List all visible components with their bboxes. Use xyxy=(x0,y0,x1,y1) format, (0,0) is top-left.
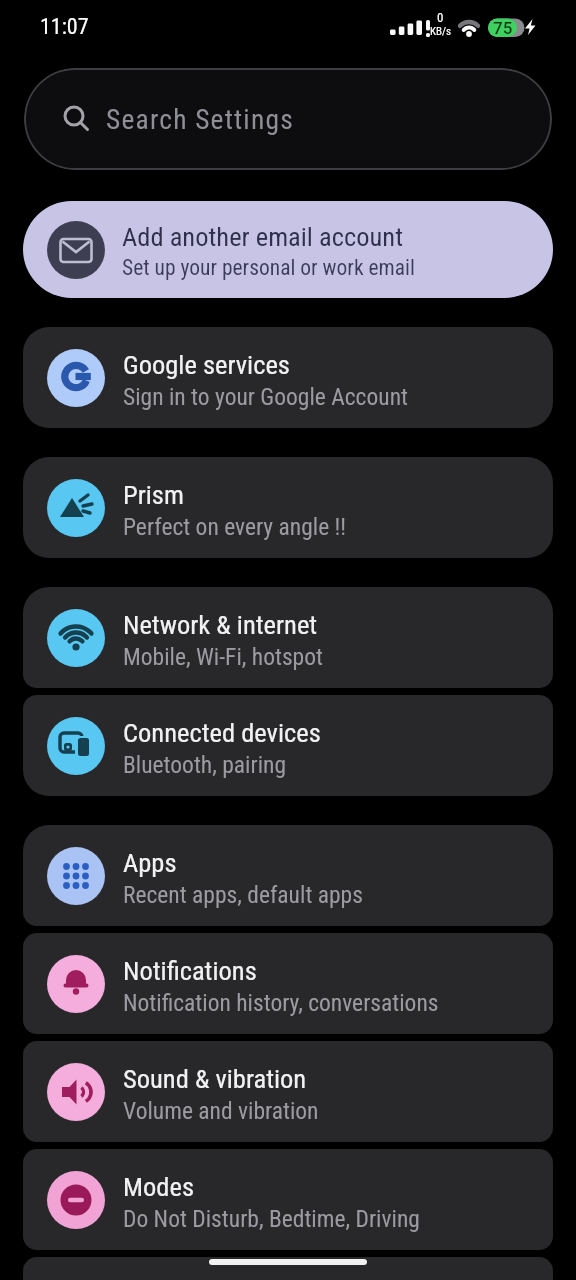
staticText: Perfect on every angle !! xyxy=(123,513,347,541)
staticText: Recent apps, default apps xyxy=(123,881,363,909)
button[interactable]: Connected devices xyxy=(23,695,553,796)
staticText: 11:07 xyxy=(40,14,89,40)
button[interactable]: Google services xyxy=(23,327,553,428)
button[interactable]: Add another email account xyxy=(23,201,553,298)
button[interactable]: Modes xyxy=(23,1149,553,1250)
button[interactable]: Network & internet xyxy=(23,587,553,688)
staticText: Bluetooth, pairing xyxy=(123,751,286,779)
staticText: Set up your personal or work email xyxy=(122,255,415,280)
staticText: 75 xyxy=(493,18,513,37)
button[interactable]: Apps xyxy=(23,825,553,926)
button[interactable]: Prism xyxy=(23,457,553,558)
staticText: Network & internet xyxy=(123,609,318,640)
staticText: Sound & vibration xyxy=(123,1063,307,1094)
staticText: Connected devices xyxy=(123,717,321,748)
staticText: 0 xyxy=(437,10,444,25)
staticText: Sign in to your Google Account xyxy=(123,383,408,411)
staticText: Notification history, conversations xyxy=(123,989,439,1017)
staticText: Modes xyxy=(123,1171,194,1202)
staticText: Prism xyxy=(123,479,184,510)
staticText: Apps xyxy=(123,847,177,878)
button[interactable]: Notifications xyxy=(23,933,553,1034)
staticText: KB/s xyxy=(430,25,452,38)
staticText: Google services xyxy=(123,349,290,380)
button[interactable]: Sound & vibration xyxy=(23,1041,553,1142)
staticText: Add another email account xyxy=(122,221,403,252)
staticText: Search Settings xyxy=(106,103,294,135)
button[interactable]: Search Settings xyxy=(24,68,552,170)
staticText: Do Not Disturb, Bedtime, Driving xyxy=(123,1205,420,1233)
staticText: Volume and vibration xyxy=(123,1097,319,1125)
staticText: Notifications xyxy=(123,955,257,986)
staticText: Mobile, Wi-Fi, hotspot xyxy=(123,643,323,671)
